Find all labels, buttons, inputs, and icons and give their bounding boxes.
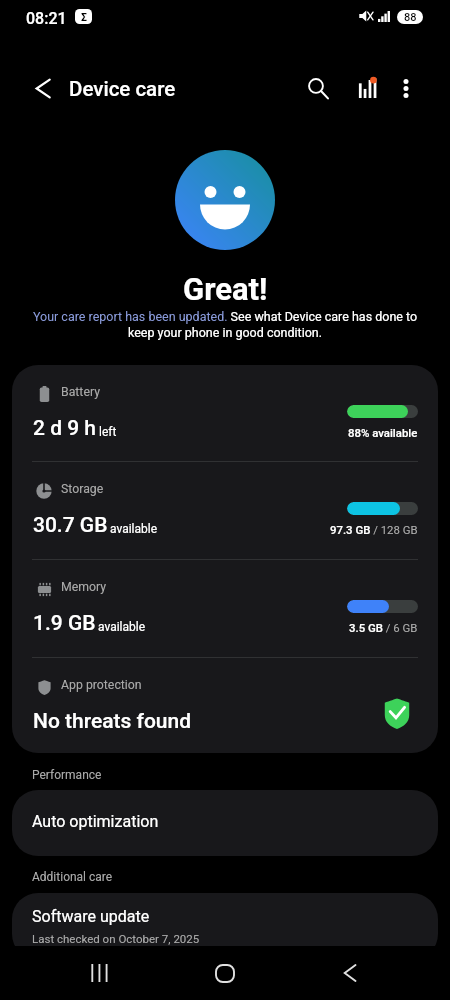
button[interactable]: Storage	[12, 462, 438, 559]
staticText: available	[110, 522, 158, 536]
button[interactable]: Memory	[12, 560, 438, 657]
staticText: Memory	[61, 580, 107, 594]
staticText: 30.7 GB	[33, 513, 108, 538]
staticText: Software update	[32, 907, 150, 926]
staticText: Performance	[32, 768, 102, 782]
button[interactable]: More options	[384, 64, 428, 112]
staticText: 2 d 9 h	[33, 416, 97, 441]
staticText: available	[98, 620, 146, 634]
staticText: Your care report has been updated. See w…	[22, 309, 428, 340]
staticText: left	[99, 425, 117, 439]
button[interactable]: Software update	[12, 893, 438, 960]
staticText: 3.5 GB / 6 GB	[349, 621, 418, 634]
staticText: Device care	[69, 77, 176, 101]
staticText: 1.9 GB	[33, 611, 96, 636]
button[interactable]: Battery	[12, 365, 438, 461]
staticText: No threats found	[33, 709, 192, 734]
staticText: 88	[404, 11, 417, 24]
staticText: Storage	[61, 482, 104, 496]
staticText: Battery	[61, 385, 101, 399]
button[interactable]: Navigate up	[20, 64, 66, 112]
staticText: Great!	[183, 271, 268, 307]
staticText: 88% available	[348, 426, 418, 439]
button[interactable]: Usage statistics	[344, 64, 388, 112]
staticText: Σ	[81, 11, 87, 23]
staticText: 08:21	[26, 9, 67, 28]
button[interactable]: Home	[179, 946, 271, 1000]
button[interactable]: Auto optimization	[12, 790, 438, 856]
staticText: Last checked on October 7, 2025	[32, 932, 200, 945]
button[interactable]: Search	[296, 64, 340, 112]
staticText: 97.3 GB / 128 GB	[330, 523, 418, 536]
staticText: Auto optimization	[32, 812, 159, 831]
button[interactable]: App protection	[12, 658, 438, 753]
staticText: Additional care	[32, 870, 113, 884]
staticText: App protection	[61, 678, 142, 692]
button[interactable]: Back	[304, 946, 396, 1000]
button[interactable]: Recent apps	[52, 946, 144, 1000]
